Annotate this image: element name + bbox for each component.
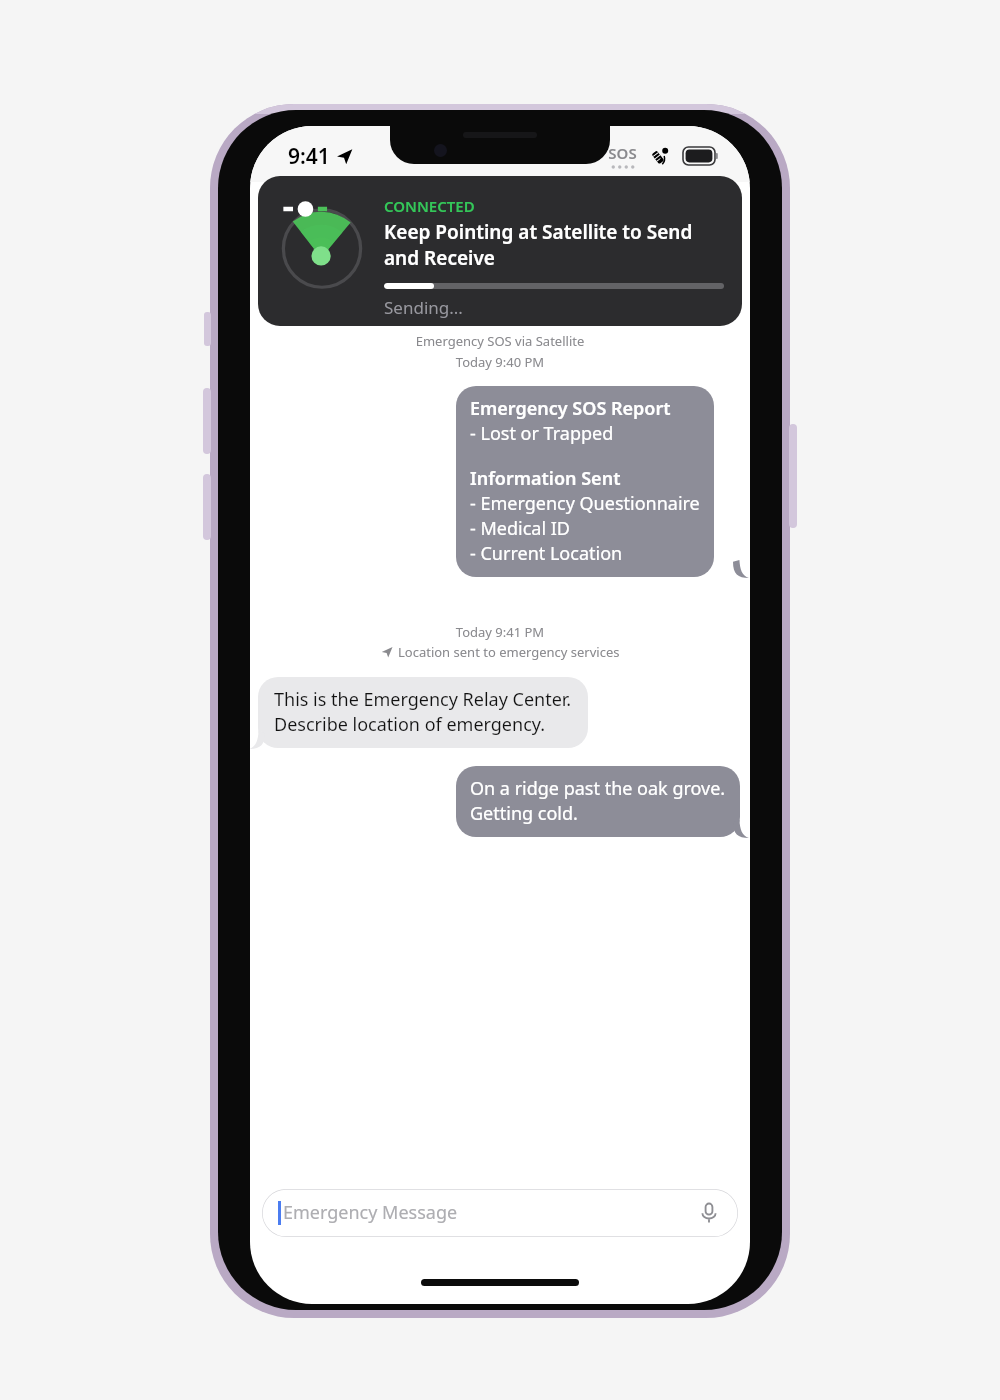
button[interactable]: Dictate message: [694, 1198, 724, 1228]
staticText: SOS: [608, 143, 637, 163]
button[interactable]: On a ridge past the oak grove.: [456, 766, 740, 837]
staticText: This is the Emergency Relay Center.: [274, 687, 572, 712]
button[interactable]: This is the Emergency Relay Center.: [258, 677, 588, 748]
staticText: Today 9:41 PM: [250, 623, 750, 641]
staticText: CONNECTED: [384, 196, 475, 216]
staticText: - Emergency Questionnaire: [470, 491, 700, 516]
staticText: Keep Pointing at Satellite to Send and R…: [384, 219, 724, 270]
staticText: Sending...: [384, 296, 463, 319]
staticText: Describe location of emergency.: [274, 712, 546, 737]
staticText: - Current Location: [470, 541, 623, 566]
staticText: Today 9:40 PM: [250, 353, 750, 371]
staticText: Information Sent: [470, 466, 621, 491]
staticText: Location sent to emergency services: [398, 643, 620, 661]
button[interactable]: Emergency SOS Report: [456, 386, 740, 577]
staticText: - Lost or Trapped: [470, 421, 614, 446]
staticText: 9:41: [288, 142, 330, 171]
staticText: Getting cold.: [470, 801, 578, 826]
button[interactable]: CONNECTED: [258, 176, 742, 326]
staticText: Emergency SOS Report: [470, 396, 671, 421]
button[interactable]: Emergency Message: [262, 1189, 738, 1237]
staticText: Emergency Message: [283, 1200, 458, 1225]
staticText: - Medical ID: [470, 516, 570, 541]
staticText: On a ridge past the oak grove.: [470, 776, 726, 801]
staticText: Emergency SOS via Satellite: [250, 332, 750, 350]
